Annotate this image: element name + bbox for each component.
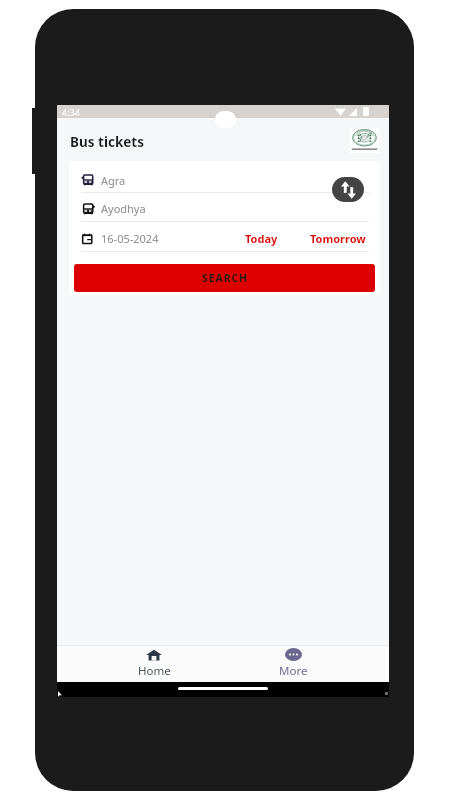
button[interactable]: Agra: [81, 168, 369, 192]
button[interactable]: 16-05-2024: [81, 231, 159, 246]
staticText: Ayodhya: [101, 201, 146, 216]
staticText: 4:34: [62, 106, 80, 118]
staticText: Home: [138, 663, 171, 679]
staticText: Tomorrow: [310, 231, 366, 246]
button[interactable]: Swap source and destination: [332, 177, 364, 202]
button[interactable]: UPSRTC logo: [350, 128, 379, 153]
button[interactable]: SEARCH: [74, 264, 375, 292]
staticText: Agra: [101, 173, 126, 188]
button[interactable]: More: [258, 645, 328, 682]
button[interactable]: Tomorrow: [307, 227, 369, 250]
button[interactable]: Home: [119, 645, 189, 682]
button[interactable]: Today: [242, 227, 281, 250]
staticText: SEARCH: [202, 271, 248, 285]
staticText: 16-05-2024: [101, 231, 159, 246]
staticText: Bus tickets: [70, 133, 144, 151]
button[interactable]: Ayodhya: [81, 196, 369, 221]
staticText: More: [279, 663, 308, 679]
staticText: Today: [245, 231, 278, 246]
